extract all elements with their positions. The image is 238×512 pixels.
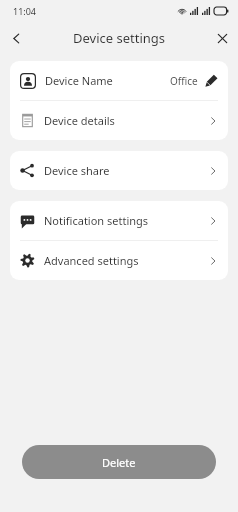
button[interactable]: Delete — [22, 445, 216, 479]
button[interactable]: Close — [206, 22, 238, 54]
staticText: 11:04 — [13, 5, 37, 17]
button[interactable]: Device Name — [10, 61, 228, 100]
staticText: Delete — [102, 455, 136, 470]
staticText: Device settings — [73, 29, 166, 47]
button[interactable]: Back — [0, 22, 32, 54]
staticText: Advanced settings — [44, 253, 139, 268]
button[interactable]: Notification settings — [10, 201, 228, 240]
button[interactable]: Device details — [10, 101, 228, 140]
staticText: Device share — [44, 163, 110, 178]
staticText: Device Name — [45, 73, 113, 88]
staticText: Notification settings — [44, 213, 149, 228]
staticText: Device details — [44, 113, 115, 128]
staticText: Office — [170, 74, 198, 88]
button[interactable]: Advanced settings — [10, 241, 228, 280]
button[interactable]: Device share — [10, 151, 228, 190]
